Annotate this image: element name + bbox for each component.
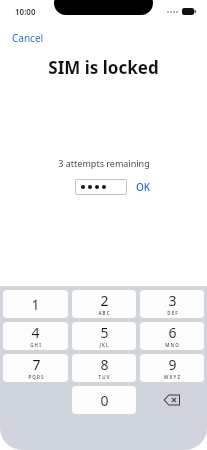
button[interactable]: 7 bbox=[3, 354, 68, 382]
staticText: A B C bbox=[98, 310, 110, 316]
staticText: P Q R S bbox=[28, 374, 44, 380]
staticText: SIM is locked bbox=[48, 56, 159, 79]
staticText: W X Y Z bbox=[164, 374, 180, 380]
staticText: Cancel bbox=[12, 31, 44, 45]
staticText: 3 bbox=[168, 291, 177, 310]
staticText: J K L bbox=[99, 342, 109, 348]
button[interactable] bbox=[75, 179, 127, 195]
button[interactable]: Cancel bbox=[10, 30, 46, 46]
staticText: 0 bbox=[100, 391, 109, 410]
staticText: 7 bbox=[32, 355, 41, 374]
staticText: 5 bbox=[100, 323, 109, 342]
staticText: 8 bbox=[100, 355, 109, 374]
button[interactable]: OK bbox=[133, 178, 154, 196]
button[interactable]: 0 bbox=[72, 386, 136, 414]
button[interactable]: 2 bbox=[72, 290, 136, 318]
button[interactable]: 4 bbox=[3, 322, 68, 350]
button[interactable]: 6 bbox=[140, 322, 204, 350]
staticText: T U V bbox=[98, 374, 110, 380]
staticText: 9 bbox=[168, 355, 177, 374]
staticText: OK bbox=[136, 180, 151, 194]
staticText: 1 bbox=[31, 295, 40, 314]
staticText: 3 attempts remaining bbox=[58, 157, 150, 169]
staticText: G H I bbox=[30, 342, 41, 348]
staticText: 6 bbox=[168, 323, 177, 342]
button[interactable]: 8 bbox=[72, 354, 136, 382]
staticText: M N O bbox=[165, 342, 179, 348]
button[interactable]: 5 bbox=[72, 322, 136, 350]
staticText: 10:00 bbox=[15, 6, 36, 17]
button[interactable]: 9 bbox=[140, 354, 204, 382]
staticText: 2 bbox=[100, 291, 109, 310]
button[interactable]: Backspace bbox=[140, 386, 204, 414]
staticText: 4 bbox=[31, 323, 40, 342]
staticText: D E F bbox=[167, 310, 178, 316]
button[interactable]: 3 bbox=[140, 290, 204, 318]
button[interactable]: 1 bbox=[3, 290, 68, 318]
